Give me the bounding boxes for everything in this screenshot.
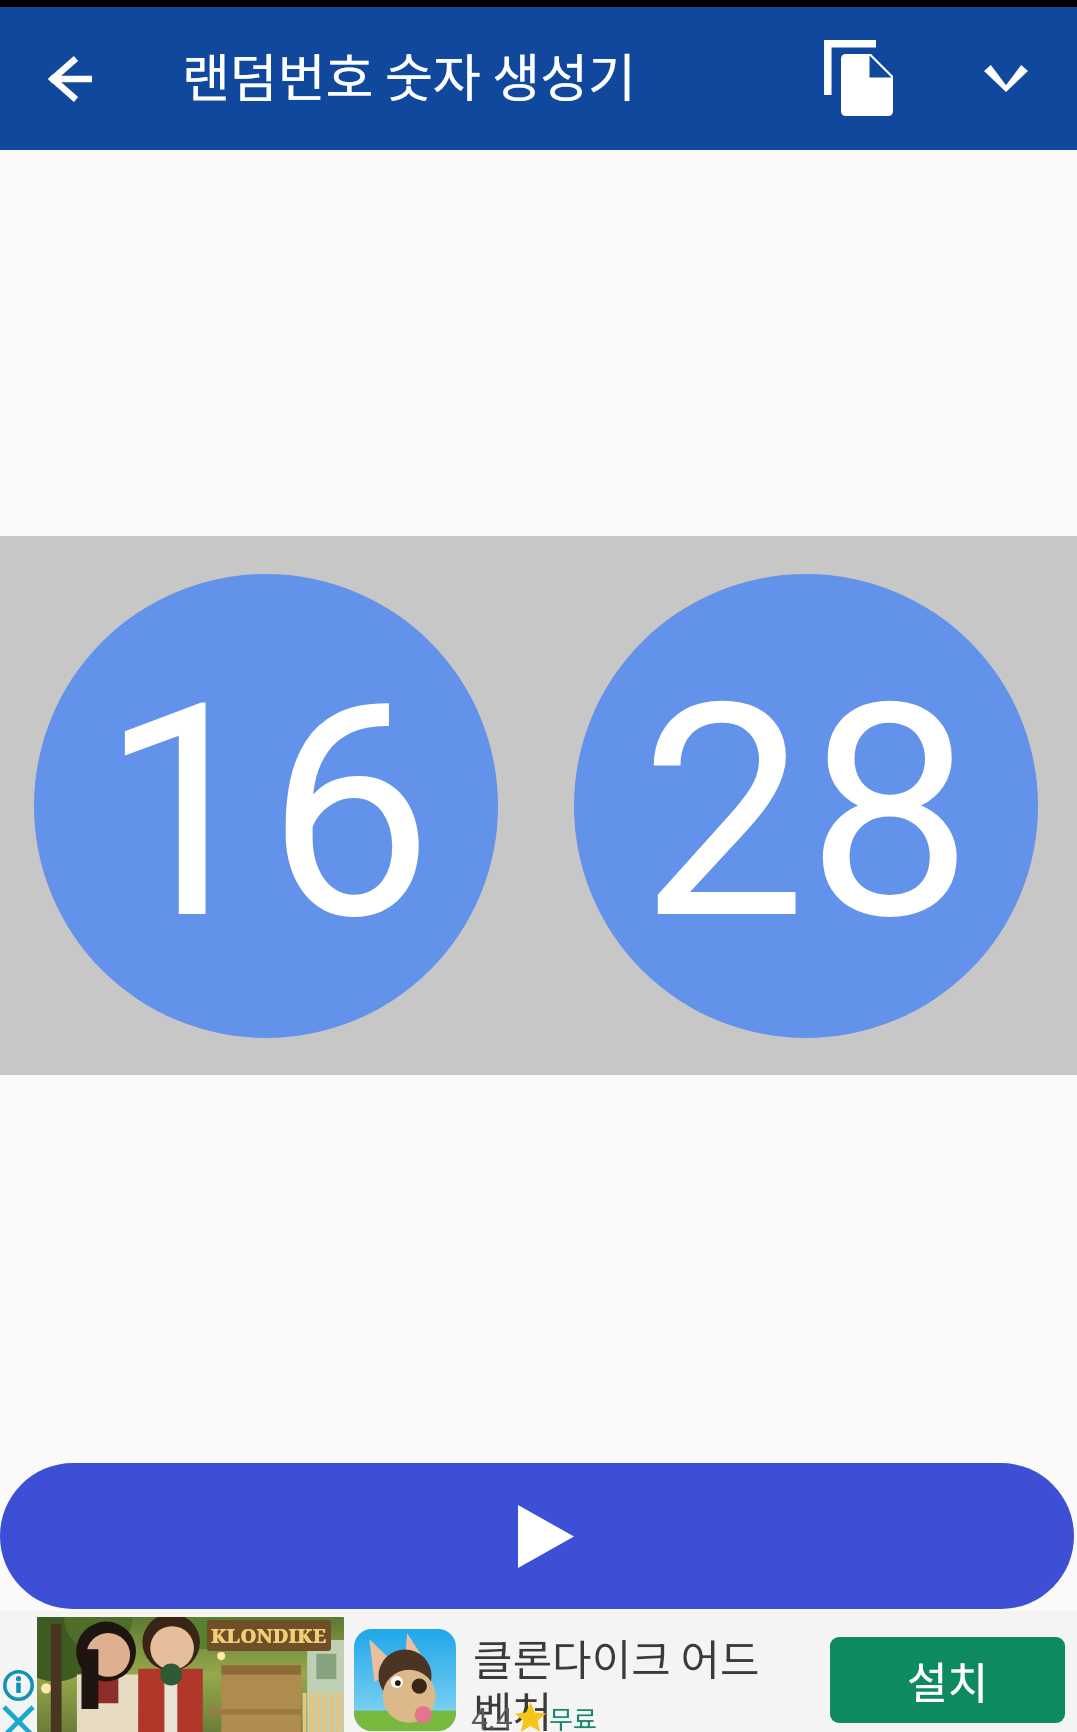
staticText: 무료	[549, 1699, 597, 1732]
button[interactable]: Close ad	[0, 1703, 36, 1732]
staticText: 랜덤번호 숫자 생성기	[182, 37, 636, 112]
button[interactable]: More options	[934, 7, 1077, 150]
button[interactable]: 28	[574, 574, 1038, 1038]
staticText: 28	[640, 639, 973, 986]
staticText: KLONDIKE	[211, 1622, 327, 1649]
button[interactable]: 설치	[830, 1637, 1065, 1723]
staticText: 클론다이크 어드벤처	[473, 1626, 791, 1732]
button[interactable]: 16	[34, 574, 498, 1038]
button[interactable]: Ad information	[0, 1667, 36, 1704]
staticText: 16	[100, 639, 433, 986]
button[interactable]: Back	[0, 7, 137, 150]
staticText: 설치	[907, 1648, 988, 1712]
staticText: 4.4	[471, 1701, 513, 1732]
button[interactable]: Generate random numbers	[0, 1463, 1074, 1609]
button[interactable]: Copy	[784, 7, 934, 150]
